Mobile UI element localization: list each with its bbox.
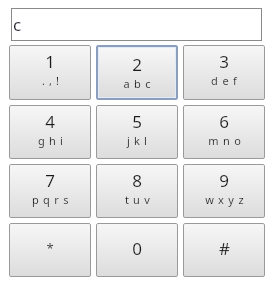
staticText: 8 [132,169,142,192]
button[interactable]: 0 [96,223,178,277]
staticText: # [219,237,230,260]
staticText: p [32,192,39,207]
staticText: q [43,192,50,207]
staticText: . [42,73,45,88]
staticText: y [228,192,234,207]
staticText: u [133,192,140,207]
staticText: 0 [132,237,142,260]
button[interactable]: 5 j k l [96,105,178,159]
button[interactable]: 4 g h i [9,105,91,159]
staticText: e [222,73,229,88]
staticText: f [233,73,237,88]
staticText: w [205,192,214,207]
staticText: i [60,133,63,148]
button[interactable]: c [11,8,262,41]
staticText: s [63,192,69,207]
staticText: c [145,76,151,91]
button[interactable]: 6 m n o [183,105,265,159]
staticText: r [54,192,59,207]
staticText: a [123,76,130,91]
staticText: k [134,133,140,148]
staticText: z [238,192,244,207]
staticText: g [38,133,45,148]
staticText: 2 [132,53,142,76]
staticText: 5 [132,110,142,133]
staticText: v [144,192,150,207]
staticText: n [223,133,230,148]
staticText: c [13,13,22,36]
staticText: j [127,133,130,148]
staticText: ! [56,73,59,88]
staticText: d [211,73,218,88]
staticText: o [234,133,241,148]
staticText: 3 [219,50,229,73]
button[interactable]: 1 . , ! [9,45,91,100]
staticText: 7 [45,169,55,192]
button[interactable]: 2 a b c [99,48,175,97]
staticText: , [49,73,52,88]
staticText: t [125,192,129,207]
staticText: * [46,239,54,257]
staticText: 9 [219,169,229,192]
staticText: 4 [45,110,55,133]
staticText: l [144,133,147,148]
staticText: 6 [219,110,229,133]
button[interactable]: pound [183,223,265,277]
staticText: b [134,76,141,91]
staticText: 1 [45,50,55,73]
button[interactable]: 8 t u v [96,164,178,218]
button[interactable]: star [9,223,91,277]
staticText: x [218,192,224,207]
button[interactable]: 3 d e f [183,45,265,100]
staticText: m [208,133,219,148]
button[interactable]: 9 w x y z [183,164,265,218]
button[interactable]: 7 p q r s [9,164,91,218]
staticText: h [49,133,56,148]
